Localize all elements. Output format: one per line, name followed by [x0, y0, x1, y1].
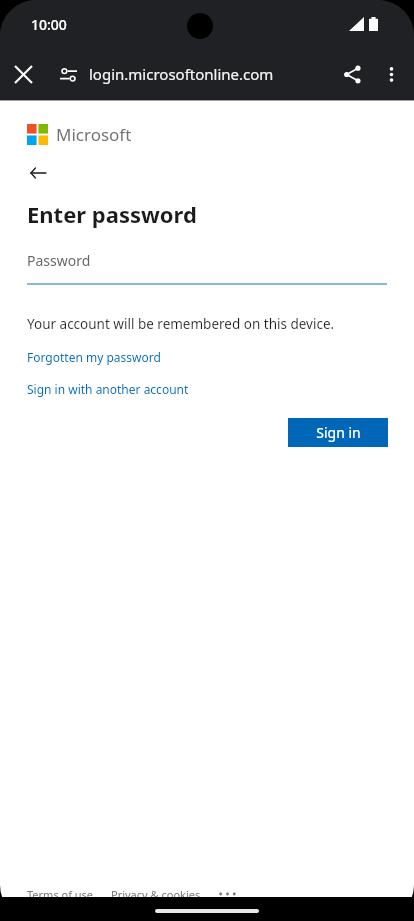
button[interactable]: More: [215, 885, 239, 903]
button[interactable]: Back: [24, 159, 52, 187]
staticText: Your account will be remembered on this …: [27, 315, 335, 333]
staticText: login.microsoftonline.com: [89, 64, 274, 84]
button[interactable]: Privacy & cookies: [111, 887, 201, 902]
button[interactable]: Password: [27, 251, 387, 285]
staticText: Forgotten my password: [27, 349, 161, 365]
button[interactable]: Page info: [48, 54, 88, 94]
staticText: Sign in with another account: [27, 381, 189, 397]
button[interactable]: Sign in: [288, 418, 388, 447]
button[interactable]: Terms of use: [27, 887, 94, 902]
staticText: Terms of use: [27, 887, 94, 902]
button[interactable]: More options: [370, 53, 412, 95]
button[interactable]: Sign in with another account: [27, 381, 189, 397]
staticText: Microsoft: [56, 123, 132, 146]
button[interactable]: Forgotten my password: [27, 349, 161, 365]
staticText: Enter password: [27, 199, 197, 229]
staticText: 10:00: [31, 15, 67, 34]
staticText: Privacy & cookies: [111, 887, 201, 902]
button[interactable]: Share: [331, 53, 373, 95]
staticText: Sign in: [316, 423, 361, 442]
button[interactable]: Close: [3, 54, 43, 94]
staticText: Password: [27, 251, 91, 270]
